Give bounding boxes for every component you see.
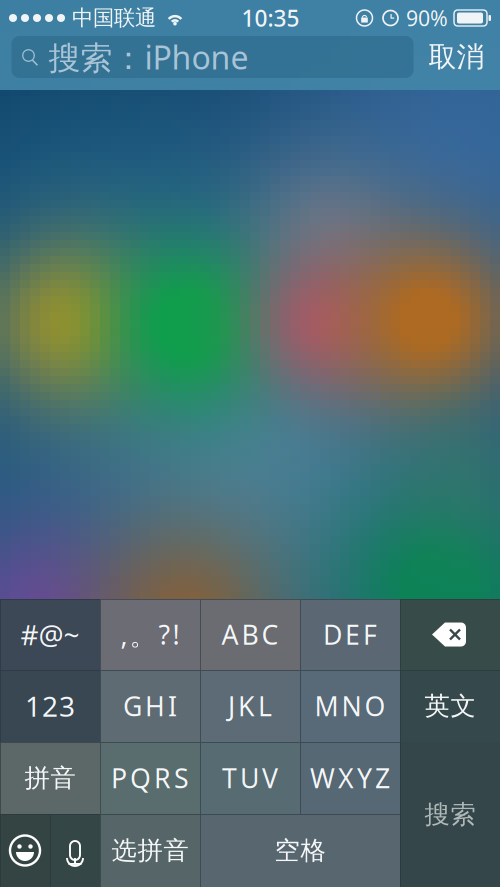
button[interactable]: 英文 xyxy=(400,670,500,742)
button[interactable] xyxy=(400,814,500,887)
button[interactable]: #@~ xyxy=(0,599,100,670)
staticText: DEF xyxy=(323,617,377,652)
staticText: 123 xyxy=(25,687,75,725)
staticText: ,。?! xyxy=(120,617,179,652)
staticText: 英文 xyxy=(424,690,475,721)
button[interactable]: Dictation xyxy=(50,814,100,887)
button[interactable]: TUV xyxy=(200,742,300,814)
staticText: #@~ xyxy=(20,616,79,653)
staticText: 搜索：iPhone xyxy=(48,36,248,78)
staticText: 10:35 xyxy=(241,3,299,33)
button[interactable]: GHI xyxy=(100,670,200,742)
button[interactable]: 123 xyxy=(0,670,100,742)
staticText: ABC xyxy=(221,617,278,652)
button[interactable]: Delete xyxy=(400,599,500,670)
button[interactable]: 取消 xyxy=(421,36,491,78)
button[interactable]: WXYZ xyxy=(300,742,400,814)
button[interactable]: Search field xyxy=(11,36,413,78)
button[interactable]: Emoji keyboard xyxy=(0,814,50,887)
staticText: JKL xyxy=(228,688,272,724)
staticText: 中国联通 xyxy=(72,5,156,31)
staticText: PQRS xyxy=(111,760,189,796)
staticText: 搜索 xyxy=(424,799,475,830)
staticText: 取消 xyxy=(428,40,484,74)
staticText: 90% xyxy=(406,4,448,32)
button[interactable]: JKL xyxy=(200,670,300,742)
button[interactable] xyxy=(400,742,500,814)
button[interactable]: DEF xyxy=(300,599,400,670)
button[interactable]: ,。?! xyxy=(100,599,200,670)
button[interactable]: ABC xyxy=(200,599,300,670)
staticText: 拼音 xyxy=(24,762,75,793)
button[interactable]: 选拼音 xyxy=(100,814,200,887)
button[interactable]: MNO xyxy=(300,670,400,742)
staticText: TUV xyxy=(222,760,278,796)
staticText: MNO xyxy=(314,688,385,724)
staticText: 选拼音 xyxy=(111,835,188,866)
staticText: WXYZ xyxy=(310,760,390,796)
button[interactable]: 空格 xyxy=(200,814,400,887)
button[interactable]: 拼音 xyxy=(0,742,100,814)
staticText: GHI xyxy=(123,688,177,724)
button[interactable]: 搜索 xyxy=(400,742,500,887)
button[interactable]: PQRS xyxy=(100,742,200,814)
staticText: 空格 xyxy=(274,835,325,866)
